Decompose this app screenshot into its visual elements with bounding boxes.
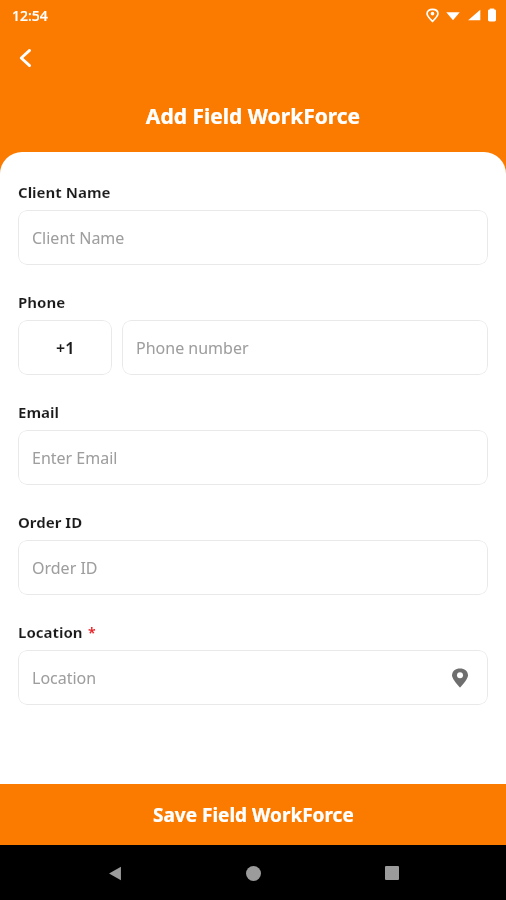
button[interactable]: Location	[18, 650, 488, 705]
button[interactable]: Enter Email	[18, 430, 488, 485]
staticText: Add Field WorkForce	[0, 102, 506, 131]
button[interactable]: Phone number	[122, 320, 488, 375]
staticText: Client Name	[18, 182, 111, 202]
staticText: Location	[32, 667, 97, 689]
staticText: Phone	[18, 292, 66, 312]
button[interactable]: Home	[229, 849, 277, 897]
button[interactable]: Back	[91, 849, 139, 897]
staticText: 12:54	[12, 6, 48, 25]
button[interactable]: Recent apps	[368, 849, 416, 897]
staticText: Enter Email	[32, 447, 118, 469]
button[interactable]: Save Field WorkForce	[0, 784, 506, 845]
staticText: Phone number	[136, 337, 249, 359]
button[interactable]: Pick location	[448, 666, 472, 690]
staticText: Client Name	[32, 227, 125, 249]
button[interactable]: Back	[4, 36, 48, 80]
staticText: +1	[56, 337, 75, 359]
staticText: Save Field WorkForce	[153, 802, 354, 828]
button[interactable]: +1	[18, 320, 112, 375]
button[interactable]: Client Name	[18, 210, 488, 265]
staticText: Location	[18, 622, 83, 642]
button[interactable]: Order ID	[18, 540, 488, 595]
staticText: Order ID	[32, 557, 98, 579]
staticText: *	[88, 623, 96, 642]
staticText: Order ID	[18, 512, 83, 532]
staticText: Email	[18, 402, 59, 422]
